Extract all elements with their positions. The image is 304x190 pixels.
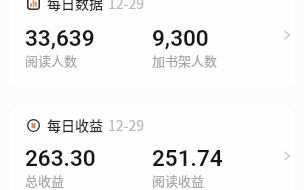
staticText: 33,639 [25,25,95,51]
staticText: 阅读收益 [152,171,205,190]
button[interactable]: 查看每日数据详情 [281,29,293,41]
staticText: 每日收益 [47,115,103,135]
staticText: 9,300 [152,25,209,51]
staticText: 12-29 [108,115,144,135]
staticText: 每日数据 [47,0,103,13]
staticText: 阅读人数 [25,51,78,70]
staticText: 263.30 [25,145,96,171]
staticText: 加书架人数 [152,51,218,70]
staticText: 12-29 [108,0,144,13]
staticText: 总收益 [25,171,65,190]
button[interactable]: 查看每日收益详情 [281,150,293,162]
button[interactable]: 每日数据 [9,0,295,88]
staticText: 251.74 [152,145,223,171]
button[interactable]: 每日收益 [9,107,295,190]
